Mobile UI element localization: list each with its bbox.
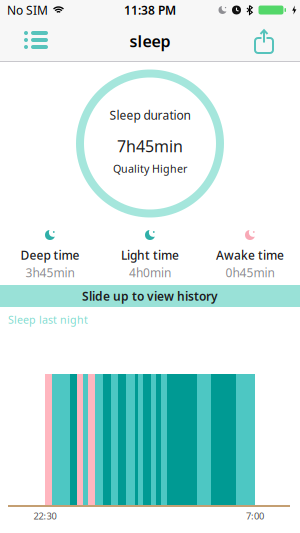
staticText: 4h0min <box>129 264 171 280</box>
button[interactable]: Share <box>252 22 300 60</box>
staticText: Sleep duration <box>109 107 190 123</box>
staticText: Quality Higher <box>113 161 187 176</box>
staticText: 3h45min <box>25 264 74 280</box>
staticText: Sleep last night <box>8 312 88 327</box>
staticText: 7:00 <box>246 510 264 522</box>
button[interactable]: Slide up to view history <box>0 285 300 307</box>
button[interactable]: Sleep records list <box>0 24 48 58</box>
staticText: Awake time <box>216 247 284 263</box>
staticText: 22:30 <box>33 510 56 522</box>
staticText: 7h45min <box>117 135 183 157</box>
staticText: No SIM <box>7 2 48 18</box>
staticText: sleep <box>129 30 170 52</box>
staticText: Deep time <box>20 247 79 263</box>
staticText: Slide up to view history <box>82 288 218 304</box>
staticText: 0h45min <box>225 264 274 280</box>
staticText: 11:38 PM <box>124 2 176 18</box>
staticText: Light time <box>121 247 179 263</box>
